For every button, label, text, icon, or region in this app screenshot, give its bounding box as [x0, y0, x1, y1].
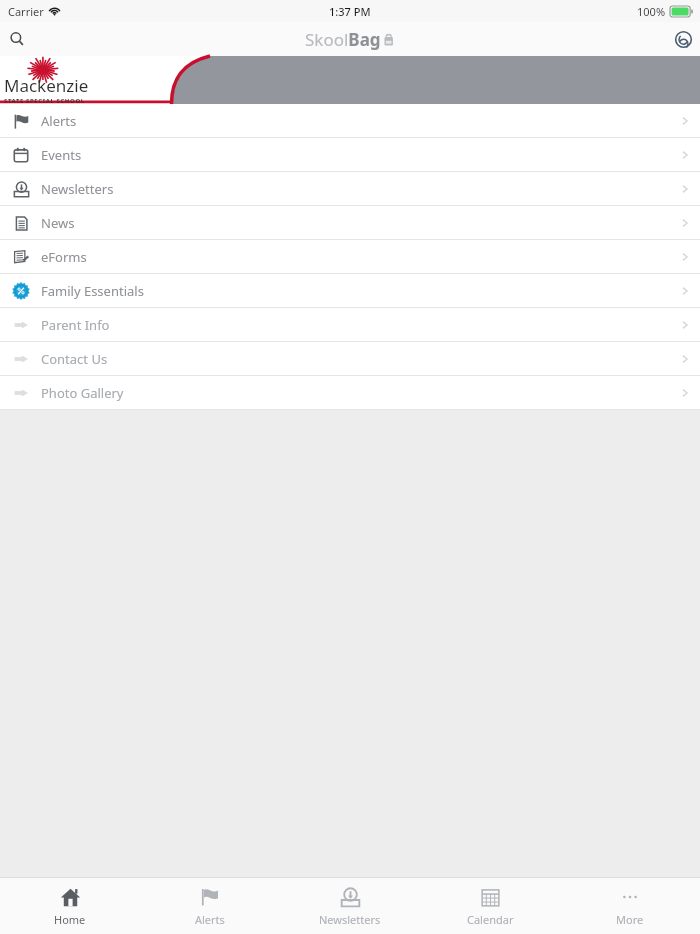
- staticText: Carrier: [8, 4, 44, 19]
- staticText: Alerts: [41, 112, 77, 130]
- staticText: Photo Gallery: [41, 384, 124, 402]
- staticText: Contact Us: [41, 350, 108, 368]
- staticText: Parent Info: [41, 316, 110, 334]
- staticText: 100%: [637, 4, 666, 19]
- button[interactable]: News: [0, 206, 700, 240]
- staticText: Newsletters: [41, 180, 114, 198]
- staticText: Events: [41, 146, 82, 164]
- staticText: More: [616, 912, 644, 927]
- staticText: eForms: [41, 248, 87, 266]
- staticText: Calendar: [467, 912, 514, 927]
- staticText: Family Essentials: [41, 282, 144, 300]
- button[interactable]: Search: [0, 22, 34, 56]
- staticText: STATE SPECIAL SCHOOL: [4, 97, 85, 104]
- button[interactable]: Contact Us: [0, 342, 700, 376]
- button[interactable]: Photo Gallery: [0, 376, 700, 410]
- button[interactable]: Newsletters: [0, 172, 700, 206]
- staticText: SkoolBag: [305, 28, 381, 51]
- button[interactable]: More: [560, 878, 700, 934]
- button[interactable]: Newsletters: [280, 878, 420, 934]
- button[interactable]: Home: [0, 878, 140, 934]
- button[interactable]: Alerts: [0, 104, 700, 138]
- button[interactable]: Parent Info: [0, 308, 700, 342]
- staticText: 1:37 PM: [329, 4, 371, 19]
- button[interactable]: Alerts: [140, 878, 280, 934]
- staticText: News: [41, 214, 75, 232]
- button[interactable]: Family Essentials: [0, 274, 700, 308]
- staticText: Alerts: [195, 912, 225, 927]
- staticText: Home: [54, 912, 86, 927]
- button[interactable]: Calendar: [420, 878, 560, 934]
- staticText: Newsletters: [319, 912, 381, 927]
- button[interactable]: Refresh: [666, 22, 700, 56]
- button[interactable]: Events: [0, 138, 700, 172]
- button[interactable]: eForms: [0, 240, 700, 274]
- staticText: Mackenzie: [4, 74, 89, 97]
